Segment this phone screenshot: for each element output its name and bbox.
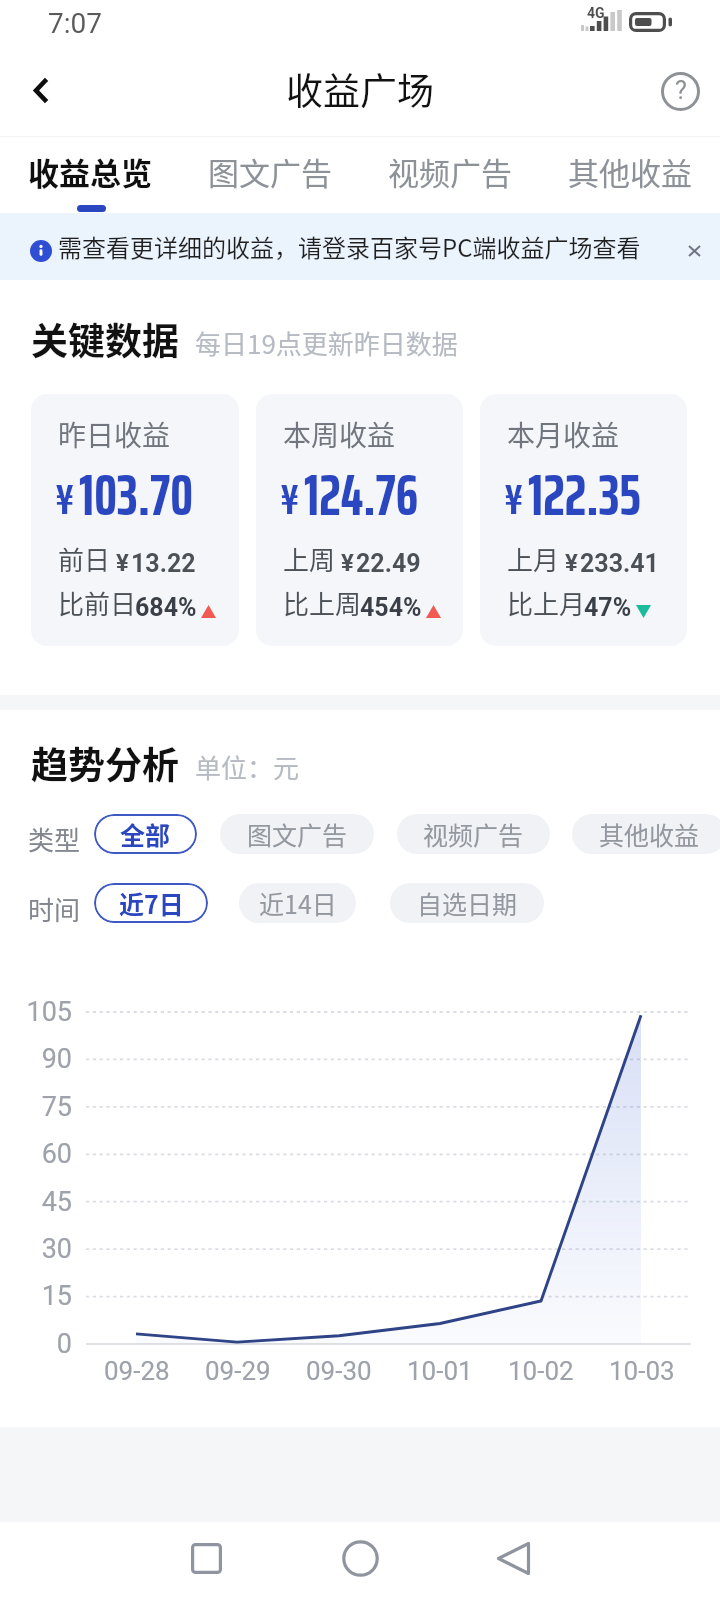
staticText: 10-02 <box>508 1356 574 1386</box>
staticText: 单位：元 <box>195 748 300 786</box>
button[interactable]: 视频广告 <box>360 137 540 213</box>
staticText: ¥ <box>504 465 524 533</box>
staticText: 7:07 <box>48 7 102 40</box>
staticText: 上周 <box>283 540 336 578</box>
button[interactable]: 近14日 <box>239 883 356 923</box>
staticText: 视频广告 <box>388 149 512 194</box>
staticText: 103.70 <box>79 450 193 540</box>
staticText: 09-30 <box>306 1356 372 1386</box>
button[interactable]: 其他收益 <box>540 137 720 213</box>
staticText: 近14日 <box>259 885 337 921</box>
staticText: 75 <box>41 1091 72 1123</box>
staticText: ? <box>675 76 687 105</box>
staticText: 122.35 <box>528 450 641 540</box>
staticText: 时间 <box>28 890 81 928</box>
staticText: 0 <box>56 1328 72 1360</box>
staticText: 90 <box>41 1043 72 1075</box>
staticText: 10-01 <box>407 1356 473 1386</box>
staticText: 比上月 <box>507 584 586 622</box>
staticText: ¥ <box>280 465 300 533</box>
staticText: 类型 <box>28 820 81 858</box>
staticText: 本周收益 <box>283 414 396 455</box>
staticText: ¥ <box>55 465 75 533</box>
button[interactable]: 本月收益 <box>480 394 687 646</box>
staticText: 收益广场 <box>286 62 434 116</box>
staticText: 22.49 <box>356 549 421 578</box>
button[interactable]: Home <box>321 1519 399 1597</box>
button[interactable]: Help <box>648 63 712 127</box>
staticText: 13.22 <box>131 549 196 578</box>
staticText: 比前日 <box>58 584 137 622</box>
staticText: 47% <box>584 593 632 622</box>
button[interactable]: 本周收益 <box>256 394 463 646</box>
staticText: 需查看更详细的收益，请登录百家号PC端收益广场查看 <box>58 229 641 264</box>
button[interactable]: Back <box>474 1519 552 1597</box>
staticText: ¥ <box>116 549 129 577</box>
button[interactable]: 自选日期 <box>390 883 544 923</box>
button[interactable]: 全部 <box>94 814 197 854</box>
staticText: 其他收益 <box>568 149 692 194</box>
staticText: 收益总览 <box>28 149 152 194</box>
staticText: 45 <box>41 1186 72 1218</box>
staticText: 自选日期 <box>417 885 518 921</box>
button[interactable]: 图文广告 <box>220 814 374 854</box>
staticText: 09-29 <box>205 1356 271 1386</box>
staticText: 30 <box>41 1233 72 1265</box>
staticText: 视频广告 <box>423 816 524 852</box>
button[interactable]: 图文广告 <box>180 137 360 213</box>
staticText: 近7日 <box>119 885 184 921</box>
button[interactable]: Recents <box>167 1519 245 1597</box>
staticText: ¥ <box>565 549 578 577</box>
staticText: 每日19点更新昨日数据 <box>195 324 458 362</box>
staticText: 454% <box>360 593 422 622</box>
button[interactable]: 视频广告 <box>397 814 550 854</box>
staticText: 10-03 <box>609 1356 675 1386</box>
staticText: 105 <box>26 996 72 1028</box>
staticText: 图文广告 <box>208 149 332 194</box>
staticText: 前日 <box>58 540 111 578</box>
staticText: 上月 <box>507 540 560 578</box>
staticText: 昨日收益 <box>58 414 171 455</box>
staticText: 09-28 <box>104 1356 170 1386</box>
staticText: 60 <box>41 1138 72 1170</box>
button[interactable]: Back <box>8 63 72 127</box>
staticText: 124.76 <box>304 450 418 540</box>
staticText: 比上周 <box>283 584 362 622</box>
staticText: 233.41 <box>580 549 659 578</box>
staticText: 趋势分析 <box>31 736 179 790</box>
staticText: 684% <box>135 593 197 622</box>
button[interactable]: Close <box>670 227 718 275</box>
staticText: 4G <box>587 5 605 21</box>
staticText: 全部 <box>120 816 171 852</box>
button[interactable]: 收益总览 <box>0 137 180 213</box>
staticText: 图文广告 <box>247 816 348 852</box>
staticText: 关键数据 <box>31 312 179 366</box>
button[interactable]: 其他收益 <box>572 814 720 854</box>
staticText: 本月收益 <box>507 414 620 455</box>
button[interactable]: 昨日收益 <box>31 394 239 646</box>
staticText: ¥ <box>341 549 354 577</box>
button[interactable]: 近7日 <box>94 883 208 923</box>
staticText: 15 <box>41 1280 72 1312</box>
staticText: 其他收益 <box>599 816 700 852</box>
